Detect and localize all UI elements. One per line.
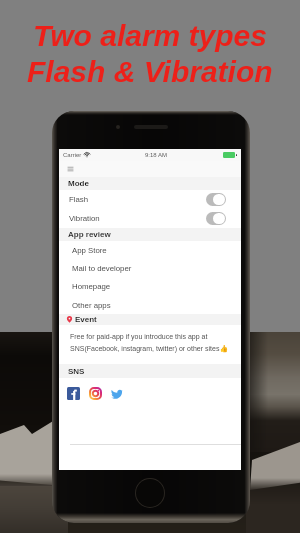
staticText: App review (68, 230, 111, 239)
button[interactable]: Twitter (111, 387, 124, 400)
button[interactable]: Flash (59, 190, 241, 209)
button[interactable]: Instagram (89, 387, 102, 400)
staticText: Event (75, 315, 97, 324)
staticText: 9:18 AM (145, 152, 168, 159)
staticText: Carrier (63, 152, 82, 159)
button[interactable]: App Store (59, 241, 241, 259)
button[interactable]: Vibration (59, 209, 241, 228)
staticText: Two alarm types (33, 19, 267, 53)
staticText: SNS (68, 367, 85, 376)
button[interactable]: Facebook (67, 387, 80, 400)
button[interactable]: Other apps (59, 296, 241, 314)
staticText: Mail to developer (72, 264, 132, 273)
staticText: App Store (72, 246, 107, 255)
staticText: Other apps (72, 301, 111, 310)
button[interactable]: Mail to developer (59, 259, 241, 277)
button[interactable]: Homepage (59, 277, 241, 296)
button[interactable]: Home (135, 478, 165, 508)
button[interactable]: Menu (67, 166, 74, 172)
staticText: Homepage (72, 282, 111, 291)
staticText: Flash (69, 195, 89, 204)
staticText: Mode (68, 179, 89, 188)
staticText: Vibration (69, 214, 100, 223)
staticText: Flash & Vibration (27, 55, 273, 89)
staticText: Free for paid-app if you introduce this … (70, 333, 229, 353)
